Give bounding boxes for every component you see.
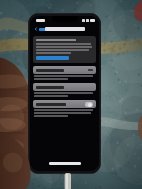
button[interactable]: Learn more about this setting bbox=[36, 56, 69, 60]
button[interactable]: Toggle Notification call handling bbox=[85, 102, 93, 107]
button[interactable]: Notification call handling bbox=[33, 100, 96, 117]
button[interactable]: Time of individual delay bbox=[33, 83, 96, 97]
button[interactable]: Vibration duration bbox=[33, 66, 96, 80]
button[interactable]: Back bbox=[33, 26, 51, 32]
button[interactable]: Learn more about this setting bbox=[33, 36, 96, 63]
